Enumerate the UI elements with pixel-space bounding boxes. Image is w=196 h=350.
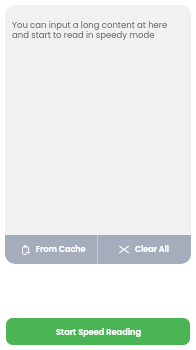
button[interactable]: You can input a long content at here and… <box>5 5 191 235</box>
button[interactable]: From Cache <box>5 235 97 264</box>
staticText: From Cache <box>36 244 86 255</box>
button[interactable]: Start Speed Reading <box>6 318 190 345</box>
staticText: You can input a long content at here and… <box>12 19 185 41</box>
staticText: Start Speed Reading <box>56 326 141 337</box>
button[interactable]: Clear All <box>98 235 191 264</box>
staticText: Clear All <box>135 244 170 255</box>
